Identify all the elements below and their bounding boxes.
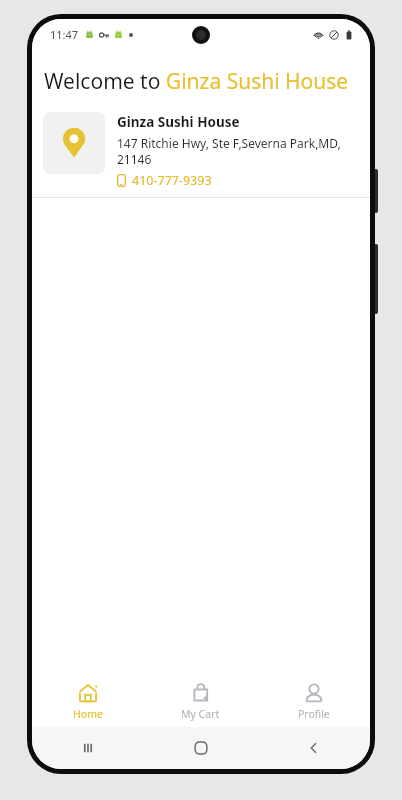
staticText: Ginza Sushi House [117,113,240,131]
button[interactable]: My Cart [144,675,257,727]
button[interactable]: Recents [32,727,144,769]
button[interactable]: Home [32,675,144,727]
staticText: Profile [298,707,330,721]
other: Call [117,174,126,187]
button[interactable]: Ginza Sushi House [32,106,370,198]
staticText: 147 Ritchie Hwy, Ste F,Severna Park,MD, … [117,135,358,167]
staticText: Welcome to Ginza Sushi House [44,67,349,96]
staticText: My Cart [181,707,220,721]
button[interactable]: Profile [257,675,370,727]
staticText: 410-777-9393 [132,172,212,189]
button[interactable]: Back [257,727,370,769]
staticText: Home [73,707,103,721]
button[interactable]: Call [117,172,212,189]
staticText: 11:47 [50,27,79,42]
button[interactable]: Home [144,727,257,769]
